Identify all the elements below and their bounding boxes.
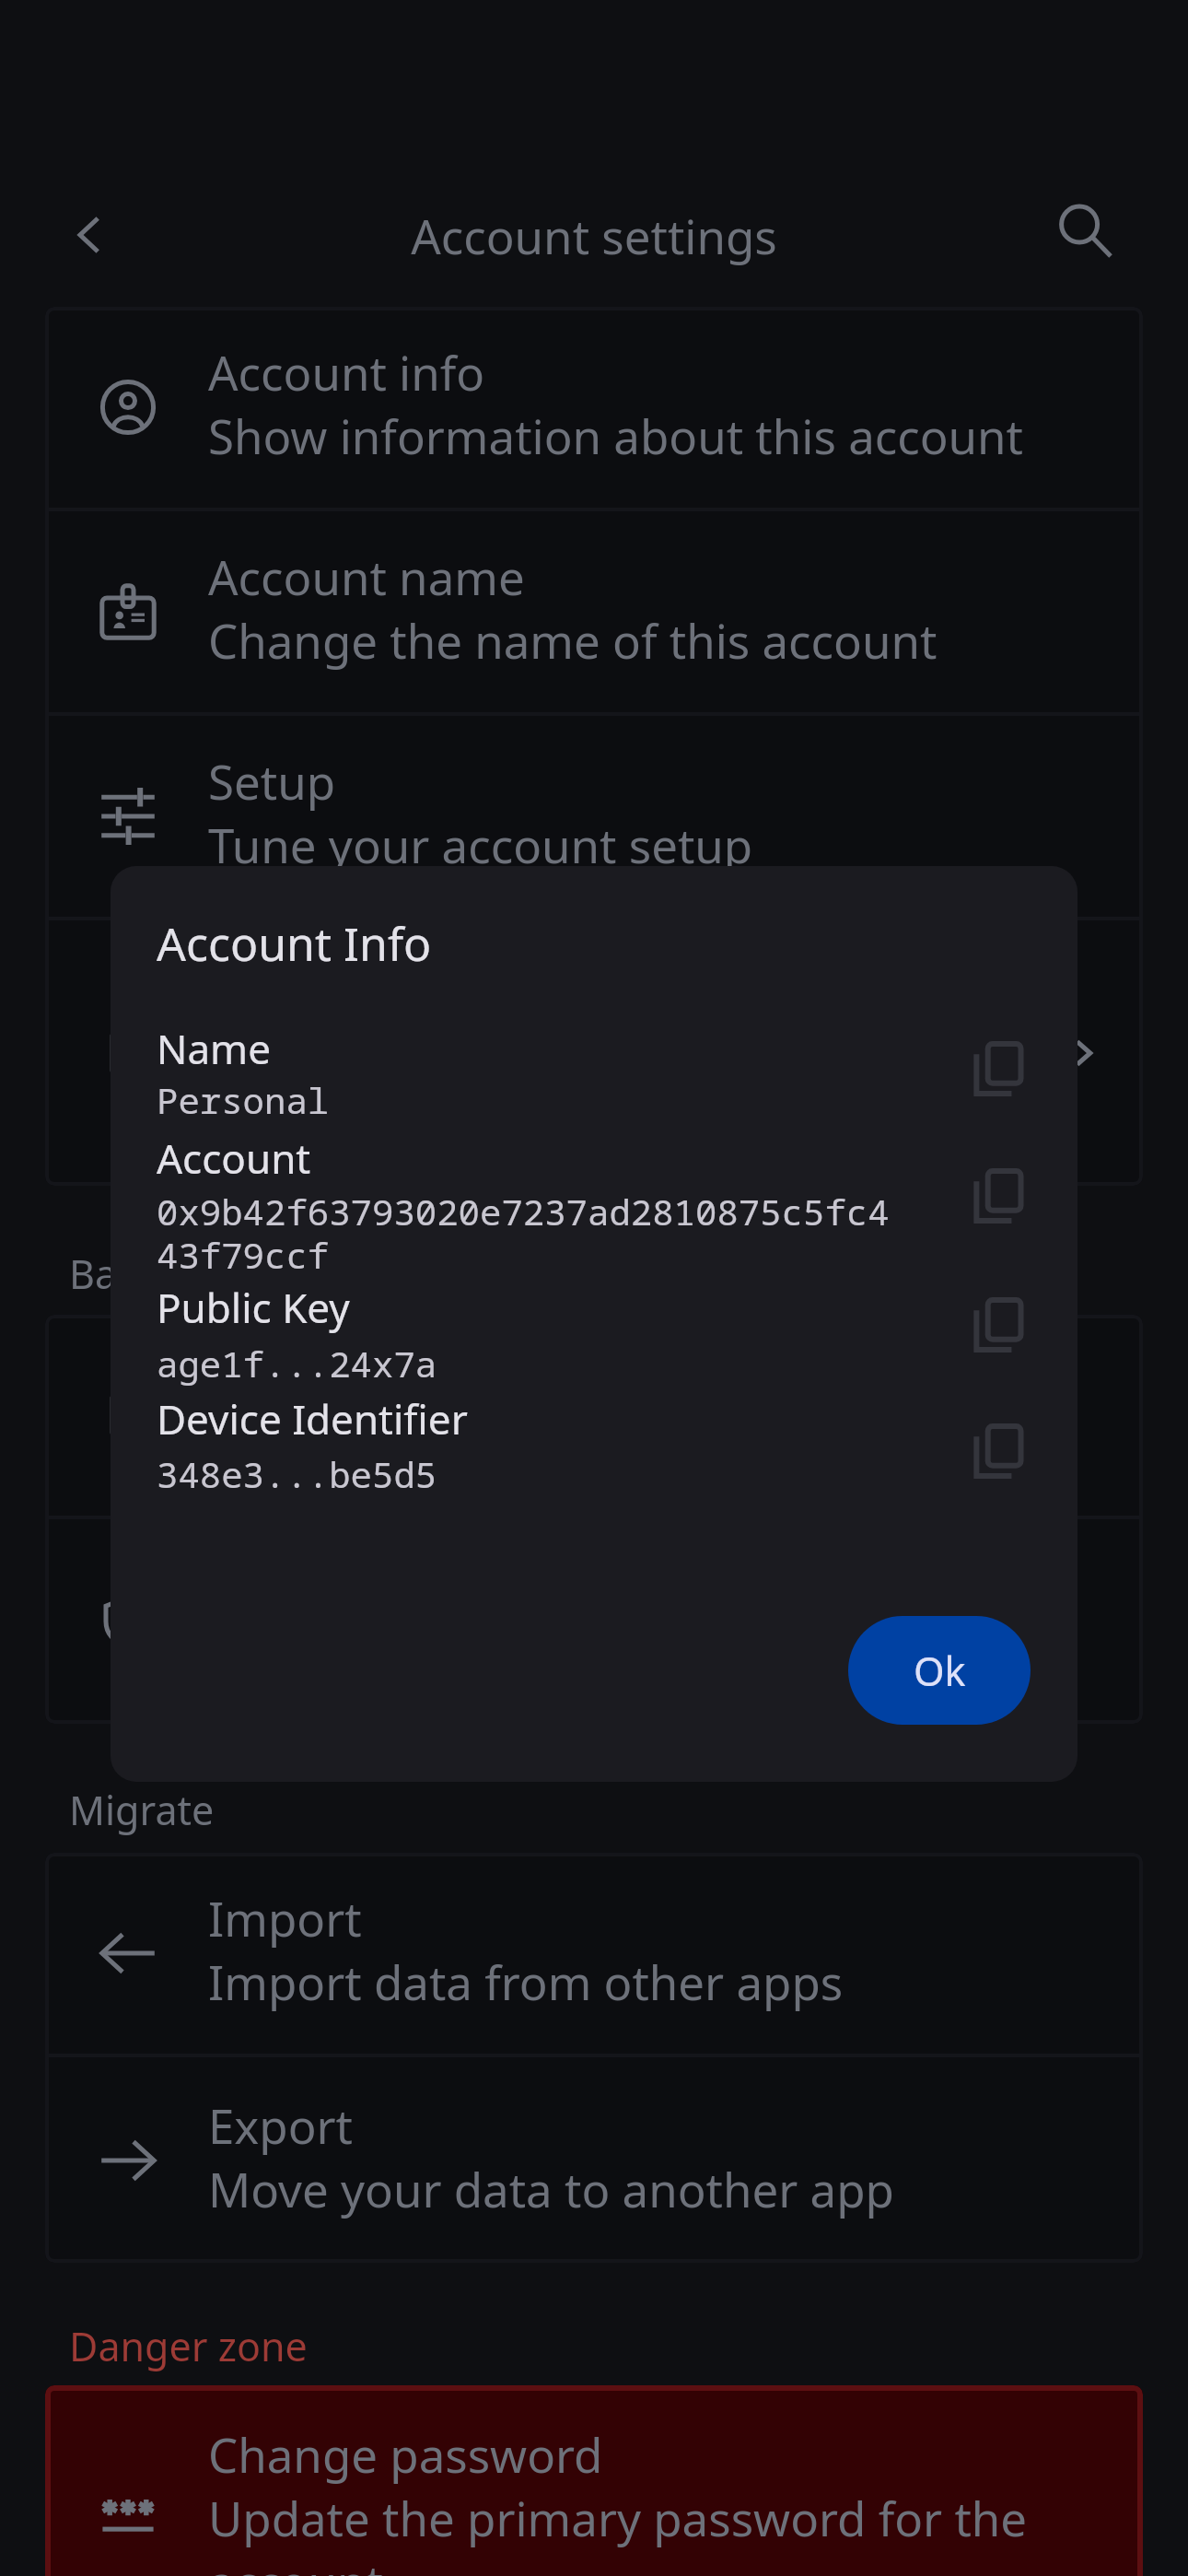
- staticText: Account settings: [411, 204, 777, 267]
- button[interactable]: Security keys: [45, 920, 1143, 1186]
- staticText: Account info: [208, 340, 485, 404]
- button[interactable]: Setup: [45, 716, 1143, 917]
- button[interactable]: Back: [54, 198, 128, 272]
- button[interactable]: Copy Name: [962, 1032, 1036, 1106]
- staticText: Setup: [208, 749, 336, 813]
- staticText: 348e3...be5d5: [157, 1449, 437, 1498]
- staticText: Import data from other apps: [208, 1950, 844, 2013]
- staticText: Move your data to another app: [208, 2157, 894, 2220]
- staticText: Migrate: [69, 1783, 215, 1837]
- staticText: Ok: [914, 1644, 966, 1698]
- button[interactable]: Copy Account: [962, 1159, 1036, 1233]
- button[interactable]: Account info: [45, 307, 1143, 508]
- button[interactable]: Ok: [848, 1616, 1031, 1725]
- staticText: Update the primary password for the: [208, 2486, 1028, 2549]
- staticText: Change password: [208, 2422, 603, 2486]
- staticText: Export: [208, 2093, 354, 2157]
- staticText: Show information about this account: [208, 404, 1024, 467]
- button[interactable]: Copy Public Key: [962, 1288, 1036, 1362]
- staticText: Personal: [157, 1075, 330, 1124]
- staticText: registered with this account: [208, 1082, 821, 1145]
- button[interactable]: Import: [45, 1853, 1143, 2054]
- button[interactable]: Recovery: [45, 1519, 1143, 1724]
- button[interactable]: Account name: [45, 511, 1143, 712]
- staticText: Security keys: [208, 954, 495, 1018]
- staticText: Public Key: [157, 1280, 350, 1335]
- staticText: account: [208, 2549, 383, 2576]
- button[interactable]: Change password: [45, 2385, 1143, 2576]
- staticText: Backup keys: [208, 1348, 481, 1411]
- staticText: Tune your account setup: [208, 813, 753, 876]
- staticText: Manage the security keys: [208, 1018, 767, 1082]
- staticText: Account name: [208, 544, 525, 608]
- button[interactable]: Export: [45, 2057, 1143, 2263]
- staticText: 43f79ccf: [157, 1230, 330, 1279]
- staticText: Name: [157, 1021, 272, 1076]
- staticText: Change the name of this account: [208, 608, 938, 672]
- staticText: Account Info: [157, 912, 432, 975]
- staticText: Account: [157, 1130, 311, 1186]
- staticText: Device Identifier: [157, 1391, 468, 1446]
- staticText: age1f...24x7a: [157, 1339, 437, 1388]
- staticText: Save a copy of your keys: [208, 1411, 744, 1475]
- staticText: Import: [208, 1886, 362, 1950]
- button[interactable]: Search: [1052, 197, 1125, 271]
- staticText: Danger zone: [69, 2319, 308, 2373]
- staticText: 0x9b42f63793020e7237ad2810875c5fc4: [157, 1187, 890, 1235]
- staticText: Backup: [69, 1247, 206, 1301]
- button[interactable]: Copy Device Identifier: [962, 1414, 1036, 1488]
- button[interactable]: Backup keys: [45, 1315, 1143, 1516]
